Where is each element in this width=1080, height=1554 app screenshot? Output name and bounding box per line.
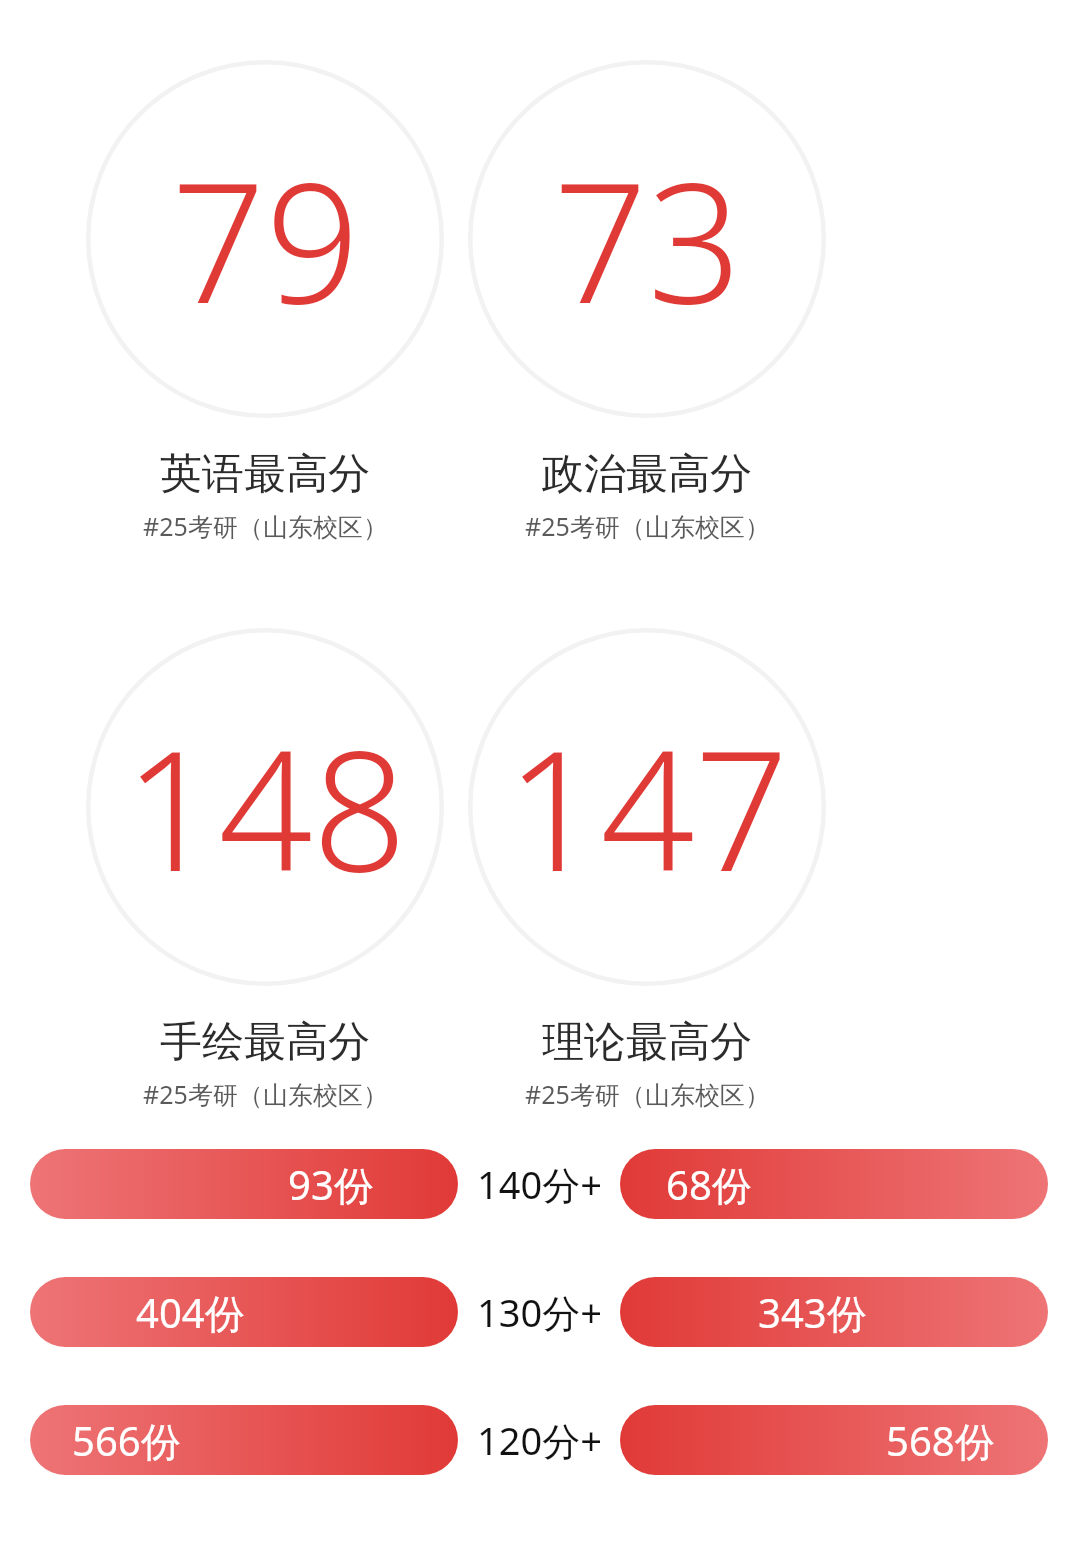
button[interactable]: 147 <box>468 628 826 1111</box>
staticText: 政治最高分 <box>542 448 752 501</box>
button[interactable]: 93份 <box>30 1149 458 1219</box>
staticText: 343份 <box>758 1285 867 1340</box>
button[interactable]: 343份 <box>620 1277 1048 1347</box>
staticText: 404份 <box>136 1285 245 1340</box>
staticText: 566份 <box>72 1413 181 1468</box>
staticText: 理论最高分 <box>542 1016 752 1069</box>
staticText: 130分+ <box>477 1286 602 1338</box>
staticText: 手绘最高分 <box>160 1016 370 1069</box>
button[interactable]: 148 <box>86 628 444 1111</box>
staticText: 68份 <box>666 1157 752 1212</box>
button[interactable]: 404份 <box>30 1277 458 1347</box>
staticText: #25考研（山东校区） <box>143 509 388 543</box>
button[interactable]: 566份 <box>30 1405 458 1475</box>
staticText: 120分+ <box>477 1414 602 1466</box>
button[interactable]: 79 <box>86 60 444 543</box>
button[interactable]: 73 <box>468 60 826 543</box>
staticText: #25考研（山东校区） <box>143 1077 388 1111</box>
button[interactable]: 568份 <box>620 1405 1048 1475</box>
staticText: 79 <box>171 127 360 352</box>
staticText: #25考研（山东校区） <box>525 1077 770 1111</box>
staticText: 148 <box>124 695 407 920</box>
staticText: 568份 <box>886 1413 995 1468</box>
staticText: 140分+ <box>477 1158 602 1210</box>
staticText: 147 <box>506 695 789 920</box>
button[interactable]: 68份 <box>620 1149 1048 1219</box>
staticText: #25考研（山东校区） <box>525 509 770 543</box>
staticText: 93份 <box>288 1157 374 1212</box>
staticText: 73 <box>553 127 742 352</box>
staticText: 英语最高分 <box>160 448 370 501</box>
